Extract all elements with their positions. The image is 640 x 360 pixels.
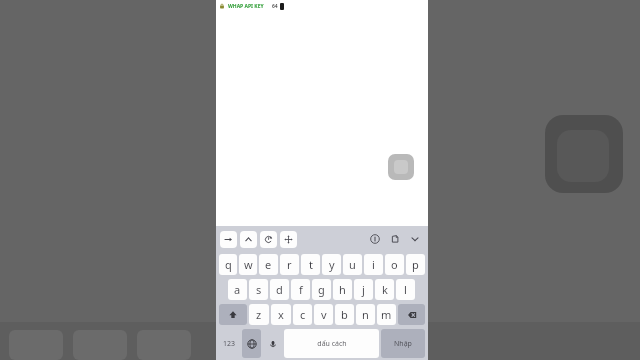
button[interactable]: h	[333, 279, 352, 300]
button[interactable]: n	[356, 304, 375, 325]
staticText: a	[234, 282, 241, 297]
button[interactable]: x	[271, 304, 291, 325]
staticText: l	[404, 282, 407, 297]
button[interactable]: s	[249, 279, 268, 300]
button[interactable]: Floating control	[388, 154, 414, 180]
staticText: k	[382, 282, 388, 297]
staticText: o	[391, 257, 398, 272]
button[interactable]: y	[322, 254, 341, 275]
button[interactable]: Info	[366, 230, 384, 248]
staticText: j	[362, 282, 365, 297]
staticText: e	[265, 257, 272, 272]
button[interactable]: Undo	[260, 231, 277, 248]
staticText: n	[362, 307, 369, 322]
button[interactable]: 123	[219, 329, 240, 358]
staticText: i	[372, 257, 375, 272]
button[interactable]: Shift	[219, 304, 247, 325]
button[interactable]: dấu cách	[284, 329, 379, 358]
staticText: dấu cách	[317, 339, 347, 349]
staticText: c	[300, 307, 306, 322]
button[interactable]: d	[270, 279, 289, 300]
staticText: b	[341, 307, 348, 322]
button[interactable]: f	[291, 279, 310, 300]
button[interactable]: m	[377, 304, 396, 325]
staticText: m	[381, 307, 392, 322]
button[interactable]: w	[239, 254, 257, 275]
button[interactable]: k	[375, 279, 394, 300]
button[interactable]: Move cursor	[280, 231, 297, 248]
button[interactable]: e	[259, 254, 278, 275]
button[interactable]: Tab	[220, 231, 237, 248]
button[interactable]: Backspace	[398, 304, 425, 325]
staticText: f	[299, 282, 303, 297]
button[interactable]: i	[364, 254, 383, 275]
staticText: d	[276, 282, 283, 297]
button[interactable]: c	[293, 304, 312, 325]
staticText: WHAP API KEY	[228, 3, 264, 10]
button[interactable]: a	[228, 279, 247, 300]
button[interactable]: Voice input	[263, 329, 282, 358]
staticText: t	[309, 257, 313, 272]
staticText: z	[256, 307, 262, 322]
staticText: s	[256, 282, 262, 297]
button[interactable]: q	[219, 254, 237, 275]
button[interactable]: Change language	[242, 329, 261, 358]
staticText: y	[329, 257, 335, 272]
staticText: Nhập	[394, 339, 412, 349]
staticText: g	[318, 282, 325, 297]
button[interactable]: b	[335, 304, 354, 325]
button[interactable]: v	[314, 304, 333, 325]
staticText: 123	[223, 339, 236, 349]
staticText: u	[349, 257, 356, 272]
staticText: h	[339, 282, 346, 297]
button[interactable]: Shift up	[240, 231, 257, 248]
staticText: p	[412, 257, 419, 272]
button[interactable]: u	[343, 254, 362, 275]
button[interactable]: t	[301, 254, 320, 275]
button[interactable]: o	[385, 254, 404, 275]
button[interactable]: Nhập	[381, 329, 425, 358]
button[interactable]: z	[249, 304, 269, 325]
button[interactable]: r	[280, 254, 299, 275]
button[interactable]: g	[312, 279, 331, 300]
staticText: 64	[272, 3, 278, 10]
button[interactable]: j	[354, 279, 373, 300]
staticText: x	[278, 307, 284, 322]
staticText: v	[321, 307, 327, 322]
button[interactable]: Hide keyboard	[406, 230, 424, 248]
button[interactable]: Clipboard	[386, 230, 404, 248]
staticText: w	[244, 257, 253, 272]
button[interactable]: l	[396, 279, 415, 300]
staticText: q	[225, 257, 232, 272]
staticText: r	[287, 257, 292, 272]
button[interactable]: p	[406, 254, 425, 275]
